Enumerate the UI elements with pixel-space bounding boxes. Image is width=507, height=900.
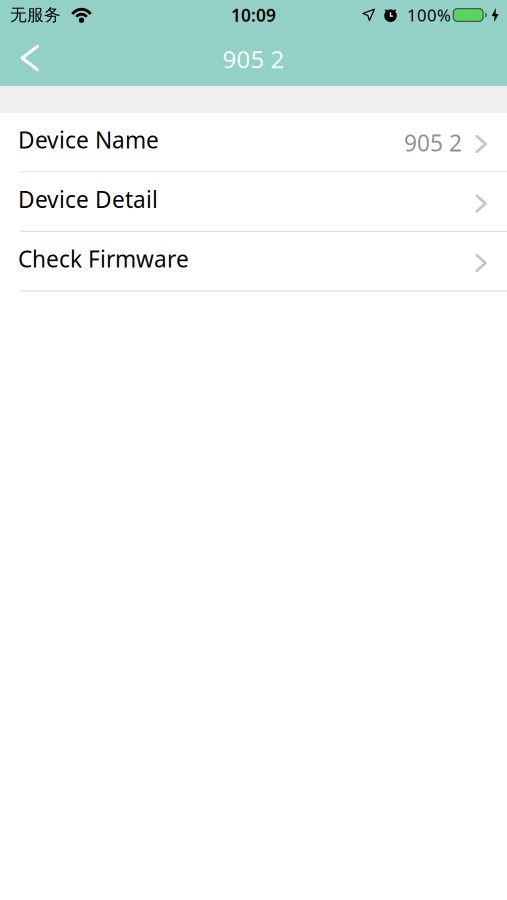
staticText: 无服务 <box>10 4 61 25</box>
button[interactable]: Device Detail <box>0 172 507 232</box>
button[interactable]: Back <box>0 31 51 85</box>
button[interactable]: Device Name <box>0 113 507 172</box>
staticText: Device Name <box>18 124 159 155</box>
staticText: 10:09 <box>231 3 276 27</box>
staticText: Device Detail <box>18 184 158 215</box>
staticText: 100% <box>407 4 451 26</box>
button[interactable]: Check Firmware <box>0 232 507 291</box>
staticText: 905 2 <box>404 127 462 158</box>
staticText: Check Firmware <box>18 243 189 274</box>
staticText: 905 2 <box>222 43 284 75</box>
